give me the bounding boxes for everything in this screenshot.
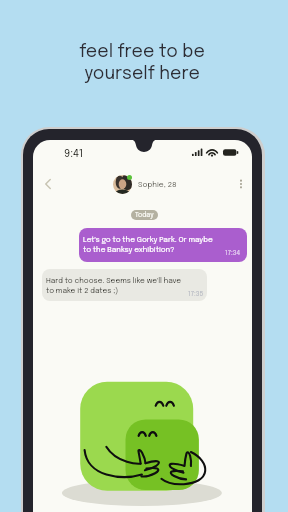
staticText: Sophie, 28 xyxy=(138,181,177,189)
button[interactable]: More options xyxy=(231,174,251,194)
button[interactable]: Back xyxy=(38,174,58,194)
staticText: 9:41 xyxy=(64,148,84,159)
staticText: 17:34 xyxy=(225,250,241,257)
staticText: Let's go to the Gorky Park. Or maybe to … xyxy=(83,236,213,254)
staticText: Today xyxy=(135,212,154,219)
staticText: 17:35 xyxy=(188,291,204,298)
staticText: Hard to choose. Seems like we'll have to… xyxy=(46,277,181,295)
button[interactable]: Sophie, 28 xyxy=(113,175,177,194)
staticText: feel free to be yourself here xyxy=(79,43,205,83)
